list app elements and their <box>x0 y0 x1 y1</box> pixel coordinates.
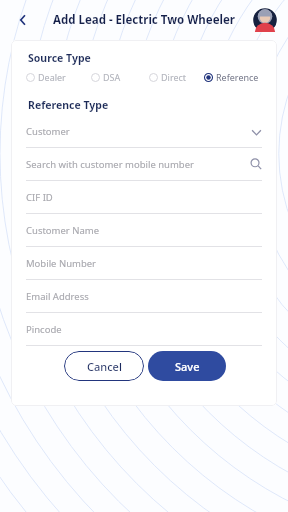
button[interactable]: Dealer <box>26 71 91 83</box>
staticText: Email Address <box>26 290 89 303</box>
staticText: Customer Name <box>26 224 100 237</box>
button[interactable]: Reference <box>204 71 262 83</box>
button[interactable]: Customer <box>26 124 262 148</box>
staticText: Customer <box>26 125 70 138</box>
button[interactable]: Pincode <box>26 322 262 346</box>
button[interactable]: Cancel <box>64 351 144 381</box>
staticText: Save <box>175 359 200 374</box>
staticText: Mobile Number <box>26 257 97 270</box>
button[interactable]: DSA <box>91 71 149 83</box>
button[interactable]: Back <box>10 7 36 33</box>
button[interactable]: Search with customer mobile number <box>26 157 262 181</box>
staticText: Direct <box>161 71 187 83</box>
button[interactable]: Save <box>148 351 226 381</box>
staticText: Add Lead - Electric Two Wheeler <box>53 12 235 28</box>
staticText: Dealer <box>38 71 66 83</box>
button[interactable]: Email Address <box>26 289 262 313</box>
button[interactable]: Direct <box>149 71 204 83</box>
staticText: Source Type <box>28 51 91 65</box>
staticText: Cancel <box>87 359 122 374</box>
staticText: Reference <box>216 71 259 83</box>
staticText: Reference Type <box>28 98 109 112</box>
button[interactable]: Mobile Number <box>26 256 262 280</box>
staticText: DSA <box>103 71 121 83</box>
staticText: CIF ID <box>26 191 53 204</box>
button[interactable]: Profile <box>252 7 278 33</box>
staticText: Search with customer mobile number <box>26 158 194 171</box>
button[interactable]: Customer Name <box>26 223 262 247</box>
button[interactable]: CIF ID <box>26 190 262 214</box>
staticText: Pincode <box>26 323 62 336</box>
